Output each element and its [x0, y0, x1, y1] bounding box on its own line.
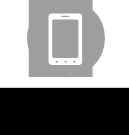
button[interactable]: Phone illustration: [0, 0, 129, 88]
